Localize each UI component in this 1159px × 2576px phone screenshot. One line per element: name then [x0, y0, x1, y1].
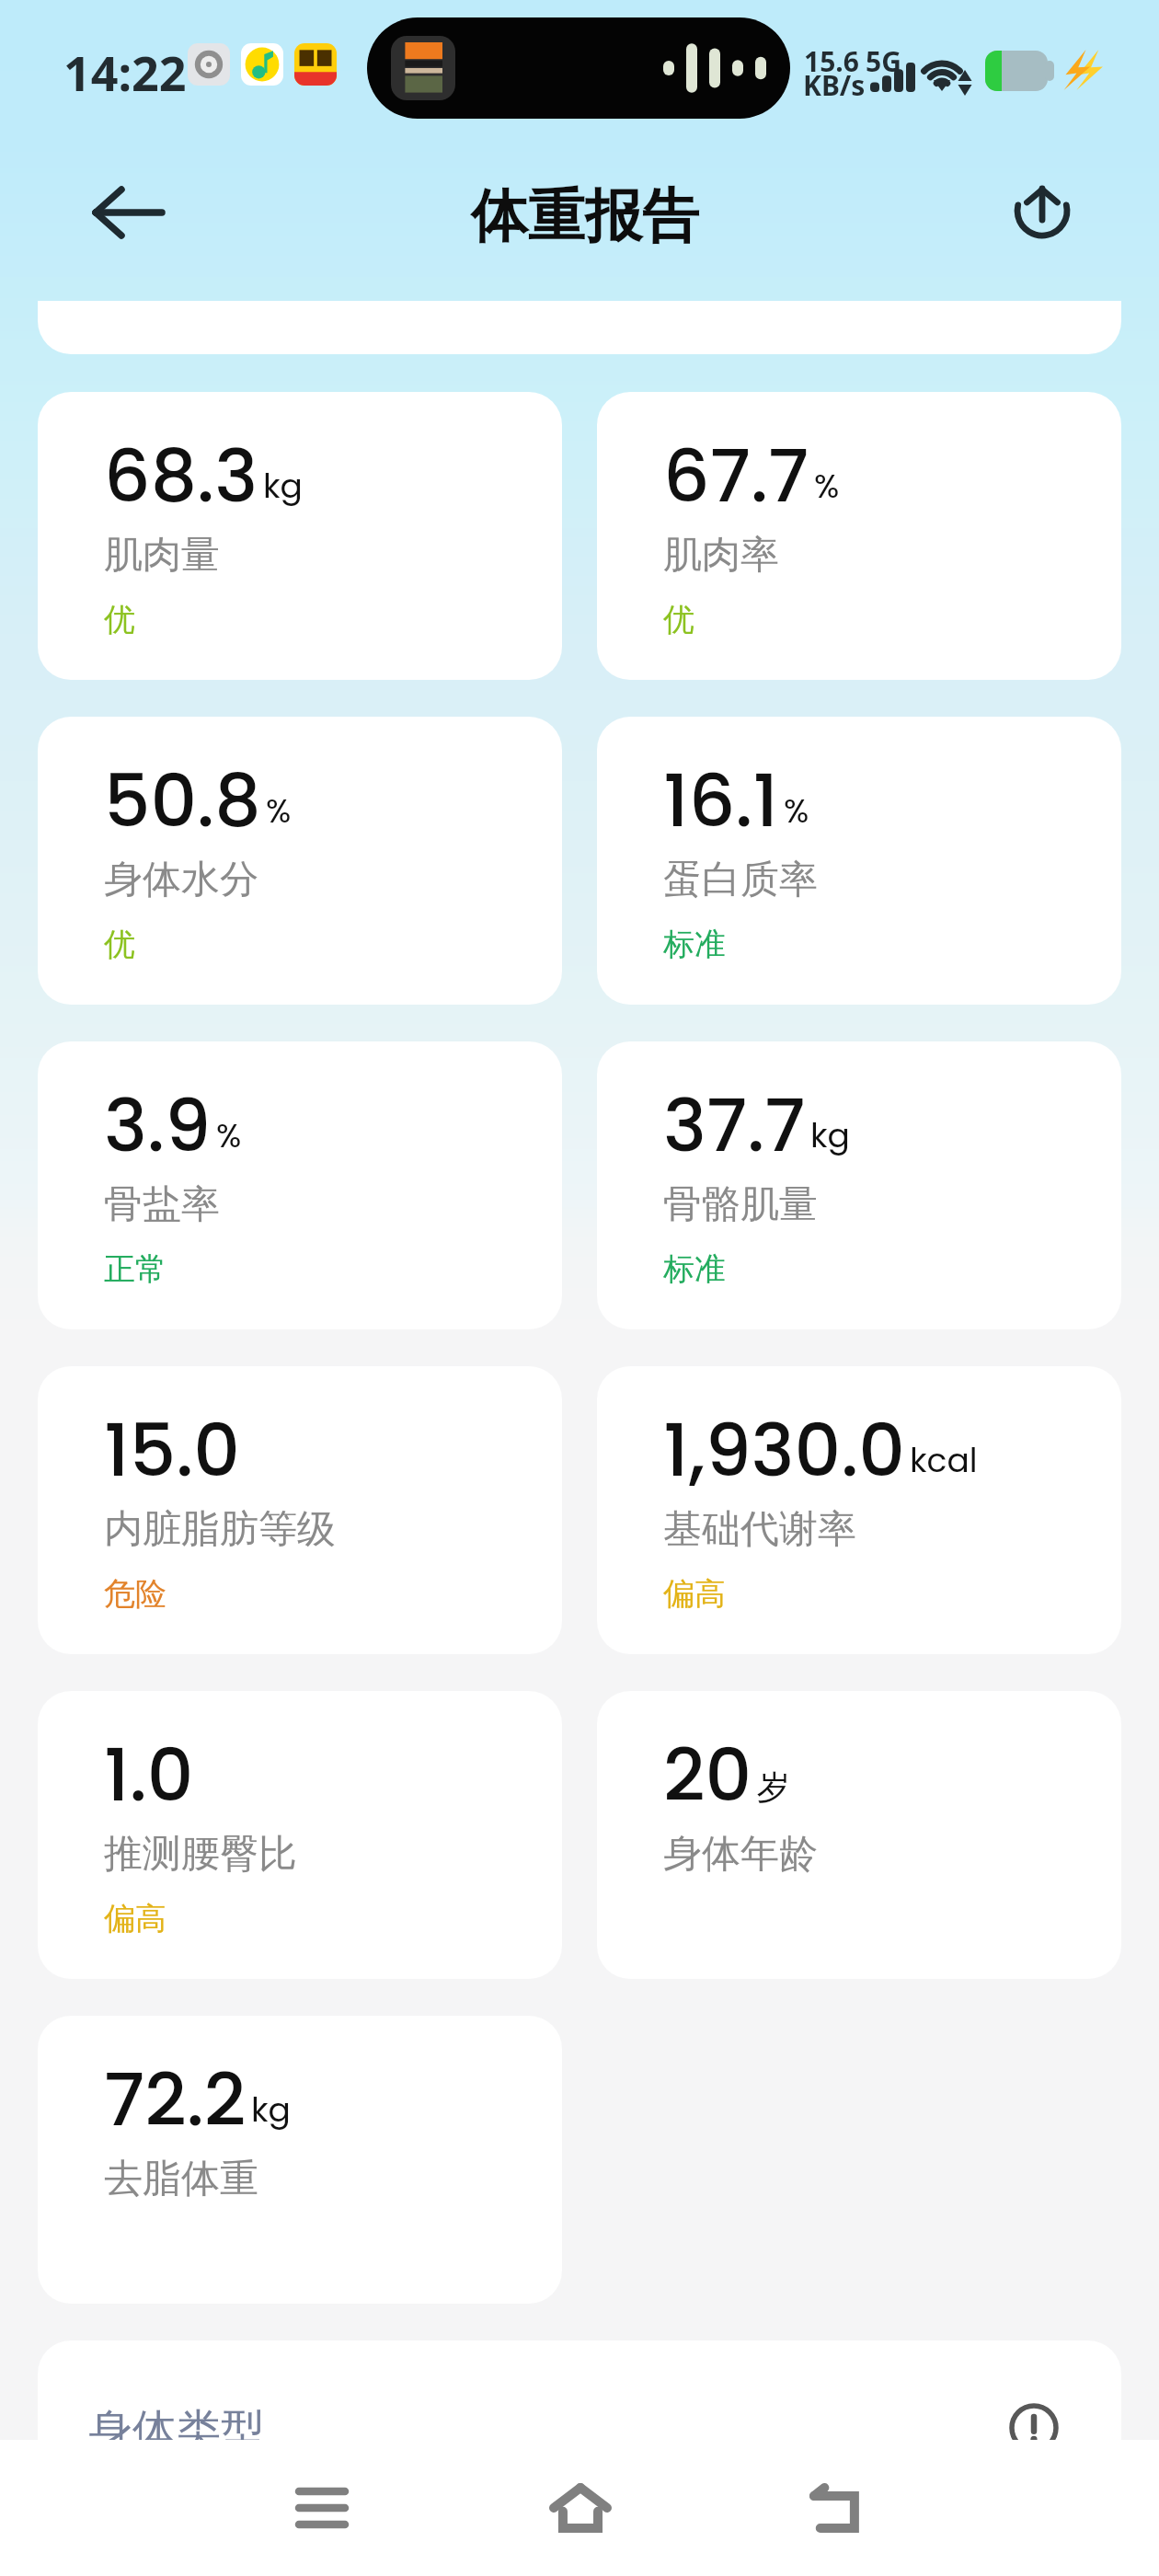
- button[interactable]: [38, 301, 1121, 354]
- staticText: 20: [663, 1724, 752, 1826]
- staticText: kg: [263, 463, 303, 509]
- staticText: %: [266, 788, 292, 834]
- staticText: 3.9: [104, 1075, 212, 1177]
- staticText: 危险: [104, 1574, 166, 1614]
- staticText: 68.3: [104, 425, 258, 527]
- staticText: 72.2: [104, 2049, 247, 2151]
- button[interactable]: Share: [993, 164, 1091, 261]
- button[interactable]: 37.7: [597, 1041, 1121, 1329]
- button[interactable]: 67.7: [597, 392, 1121, 680]
- staticText: 去脂体重: [104, 2155, 258, 2203]
- staticText: 1,930.0: [663, 1399, 905, 1501]
- staticText: 身体年龄: [663, 1830, 818, 1879]
- staticText: %: [784, 788, 809, 834]
- button[interactable]: 16.1: [597, 717, 1121, 1005]
- staticText: 骨骼肌量: [663, 1180, 818, 1229]
- button[interactable]: 20: [597, 1691, 1121, 1979]
- staticText: 14:22: [63, 40, 187, 105]
- button[interactable]: Recent apps: [267, 2453, 377, 2563]
- button[interactable]: 68.3: [38, 392, 562, 680]
- button[interactable]: Home: [525, 2453, 636, 2563]
- staticText: 岁: [757, 1766, 790, 1808]
- staticText: KB/s: [803, 66, 866, 104]
- staticText: 50.8: [104, 750, 261, 852]
- staticText: 优: [104, 925, 135, 964]
- staticText: kcal: [910, 1437, 978, 1483]
- button[interactable]: 1.0: [38, 1691, 562, 1979]
- staticText: %: [216, 1112, 242, 1158]
- staticText: 身体类型: [88, 2403, 265, 2458]
- button[interactable]: 身体类型: [38, 2340, 1121, 2524]
- staticText: 16.1: [663, 750, 779, 852]
- button[interactable]: 3.9: [38, 1041, 562, 1329]
- staticText: 蛋白质率: [663, 856, 818, 904]
- staticText: 5G: [866, 42, 901, 80]
- staticText: kg: [810, 1112, 850, 1158]
- staticText: 基础代谢率: [663, 1505, 856, 1554]
- staticText: 推测腰臀比: [104, 1830, 297, 1879]
- button[interactable]: 50.8: [38, 717, 562, 1005]
- button[interactable]: 1,930.0: [597, 1366, 1121, 1654]
- staticText: 标准: [663, 925, 726, 964]
- staticText: 体重报告: [471, 180, 699, 252]
- staticText: 标准: [663, 1249, 726, 1289]
- button[interactable]: Back: [780, 2453, 890, 2563]
- staticText: %: [814, 463, 840, 509]
- staticText: 67.7: [663, 425, 809, 527]
- staticText: 15.0: [104, 1399, 240, 1501]
- staticText: 15.6: [804, 42, 859, 80]
- staticText: 骨盐率: [104, 1180, 220, 1229]
- staticText: kg: [251, 2087, 291, 2133]
- staticText: 内脏脂肪等级: [104, 1505, 336, 1554]
- staticText: 肌肉率: [663, 531, 779, 580]
- button[interactable]: Info: [999, 2393, 1069, 2463]
- button[interactable]: 72.2: [38, 2016, 562, 2304]
- button[interactable]: Back: [80, 164, 178, 261]
- staticText: 偏高: [663, 1574, 726, 1614]
- button[interactable]: 15.0: [38, 1366, 562, 1654]
- staticText: 37.7: [663, 1075, 806, 1177]
- staticText: 1.0: [104, 1724, 194, 1826]
- staticText: 身体水分: [104, 856, 258, 904]
- staticText: 肌肉量: [104, 531, 220, 580]
- staticText: 优: [663, 600, 694, 639]
- staticText: 偏高: [104, 1899, 166, 1938]
- staticText: 正常: [104, 1249, 166, 1289]
- staticText: 优: [104, 600, 135, 639]
